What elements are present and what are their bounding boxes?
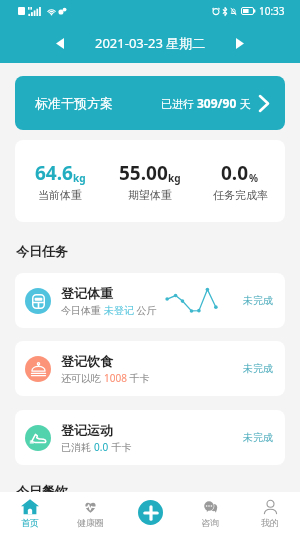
staticText: 登记运动: [61, 422, 113, 438]
staticText: 已消耗: [61, 440, 94, 454]
staticText: 今日任务: [16, 243, 68, 259]
staticText: 55.00: [119, 160, 168, 186]
staticText: 未完成: [243, 294, 273, 307]
staticText: 任务完成率: [213, 188, 268, 202]
staticText: 期望体重: [128, 188, 172, 202]
staticText: 309/90: [197, 95, 237, 111]
button[interactable]: 我的: [240, 492, 300, 533]
button[interactable]: 登记运动: [15, 410, 285, 465]
staticText: 当前体重: [38, 188, 82, 202]
button[interactable]: 咨询: [180, 492, 240, 533]
button[interactable]: Next day: [225, 28, 255, 58]
staticText: 健康圈: [77, 517, 104, 528]
button[interactable]: 健康圈: [60, 492, 120, 533]
staticText: 公斤: [134, 303, 157, 317]
staticText: 0.0: [94, 440, 109, 454]
staticText: kg: [73, 171, 86, 185]
staticText: 千卡: [127, 371, 150, 385]
staticText: 还可以吃: [61, 371, 104, 385]
button[interactable]: 标准干预方案: [15, 76, 285, 130]
staticText: 我的: [261, 517, 279, 528]
staticText: 千卡: [109, 440, 132, 454]
button[interactable]: 登记饮食: [15, 341, 285, 396]
staticText: 未完成: [243, 362, 273, 375]
staticText: 天: [237, 96, 251, 111]
staticText: 标准干预方案: [35, 95, 113, 111]
staticText: %: [249, 171, 259, 185]
staticText: 2021-03-23 星期二: [95, 34, 206, 52]
staticText: 今日餐饮: [16, 483, 68, 492]
staticText: 咨询: [201, 517, 219, 528]
button[interactable]: Previous day: [45, 28, 75, 58]
staticText: 未完成: [243, 431, 273, 444]
staticText: 已进行: [161, 96, 197, 111]
button[interactable]: Add: [138, 500, 163, 525]
staticText: 今日体重: [61, 303, 104, 317]
staticText: 未登记: [104, 304, 134, 317]
staticText: 64.6: [35, 160, 73, 186]
staticText: 1008: [104, 371, 127, 385]
staticText: 10:33: [259, 4, 285, 18]
staticText: 登记体重: [61, 285, 113, 301]
staticText: kg: [168, 171, 181, 185]
button[interactable]: 首页: [0, 492, 60, 533]
button[interactable]: 登记体重: [15, 273, 285, 328]
staticText: 0.0: [221, 160, 249, 186]
staticText: 首页: [21, 517, 39, 528]
staticText: 登记饮食: [61, 353, 113, 369]
